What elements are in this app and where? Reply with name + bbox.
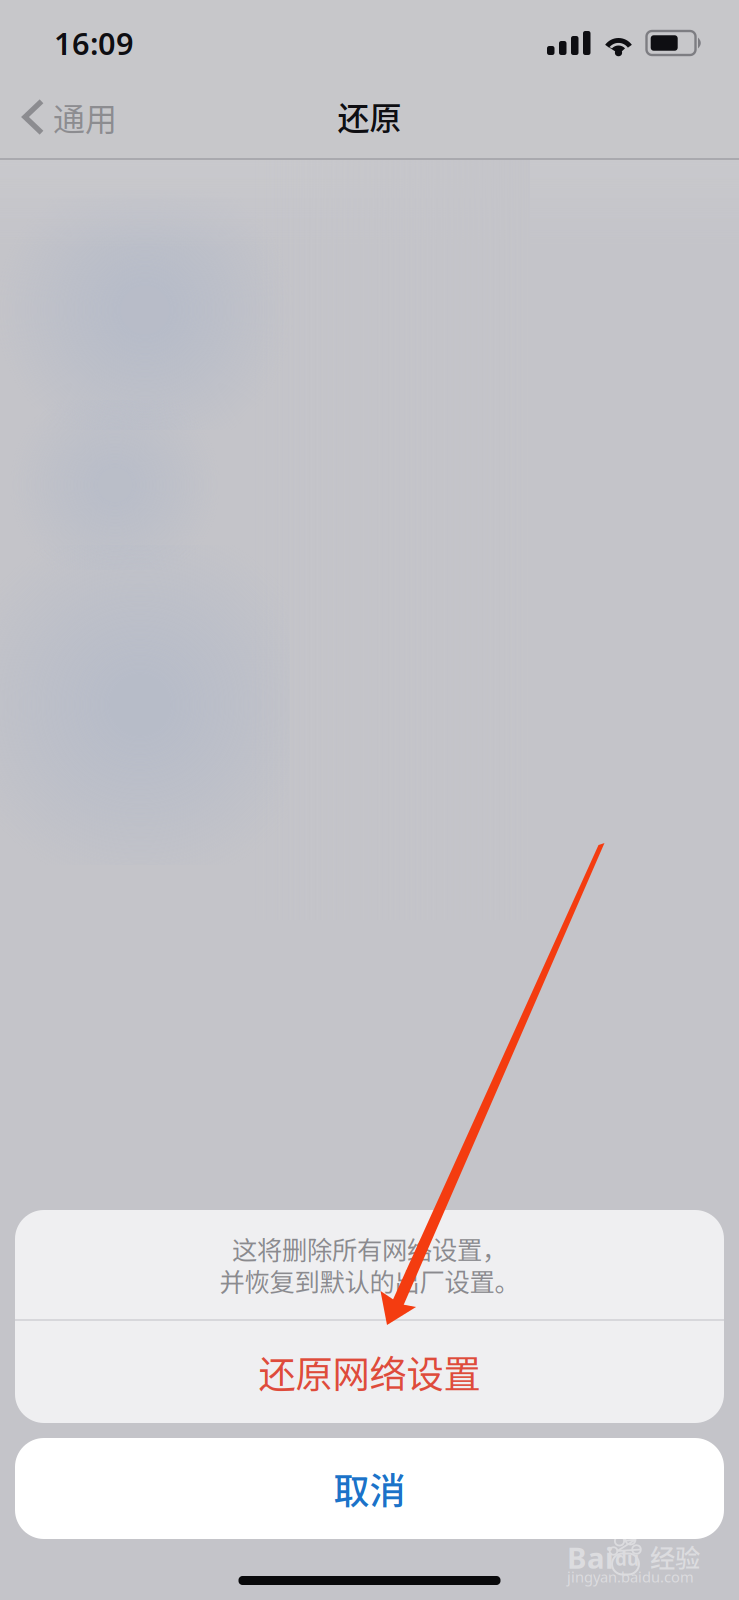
button[interactable]: 通用 — [0, 89, 131, 155]
staticText: 16:09 — [54, 23, 134, 63]
staticText: 经验 — [650, 1538, 700, 1575]
staticText: Bai — [567, 1538, 614, 1577]
staticText: 通用 — [53, 94, 117, 140]
staticText: 还原 — [337, 93, 401, 139]
staticText: 取消 — [333, 1462, 405, 1514]
staticText: 这将删除所有网络设置， — [232, 1230, 507, 1267]
staticText: 并恢复到默认的出厂设置。 — [219, 1262, 519, 1299]
button[interactable]: 还原网络设置 — [15, 1321, 724, 1423]
button[interactable]: 取消 — [15, 1438, 724, 1539]
staticText: 还原网络设置 — [258, 1345, 480, 1399]
staticText: jingyan.baidu.com — [567, 1567, 694, 1586]
staticText: du — [615, 1546, 639, 1571]
